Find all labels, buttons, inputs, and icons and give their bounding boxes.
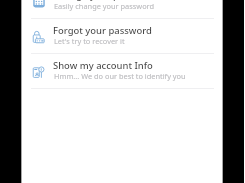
- other: Change your password: [33, 0, 45, 8]
- staticText: Show my account Info: [53, 59, 153, 72]
- button[interactable]: Show my account info: [22, 54, 223, 89]
- staticText: Hmm... We do our best to identify you: [54, 71, 186, 81]
- staticText: Change your password: [53, 0, 157, 2]
- staticText: Forgot your password: [53, 24, 152, 37]
- button[interactable]: Change your password: [22, 0, 223, 19]
- staticText: Easily change your password: [54, 1, 155, 11]
- button[interactable]: Forgot your password: [22, 19, 223, 54]
- other: Show my account info: [33, 66, 45, 78]
- staticText: Let's try to recover it: [54, 36, 125, 46]
- other: Forgot your password: [33, 31, 45, 43]
